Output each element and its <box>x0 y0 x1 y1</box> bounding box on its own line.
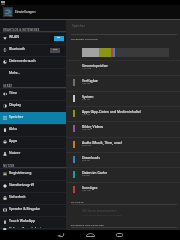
staticText: Display <box>9 102 66 107</box>
button[interactable]: Home <box>82 230 98 240</box>
staticText: Sonstiges <box>82 185 98 190</box>
staticText: 6,89 GB <box>82 82 90 85</box>
staticText: AN <box>57 36 61 39</box>
staticText: Sicherheit <box>9 194 66 199</box>
button[interactable]: Audio (Musik, Töne, usw.) <box>66 137 180 152</box>
button[interactable]: AN <box>50 36 64 41</box>
staticText: Speicher <box>9 114 66 119</box>
button[interactable]: Downloads <box>66 152 180 167</box>
button[interactable]: Recent apps <box>111 230 127 240</box>
staticText: Nutzer <box>9 150 66 155</box>
staticText: Gesamtspeicher <box>82 63 108 68</box>
button[interactable]: Gesamtspeicher <box>66 60 180 75</box>
button[interactable]: Apps <box>0 136 66 148</box>
staticText: Apps <box>9 138 66 143</box>
button[interactable]: Display <box>0 100 66 112</box>
staticText: 8,96 MB <box>82 128 91 131</box>
button[interactable]: Standortzugriff <box>0 180 66 192</box>
button[interactable]: Touch WakeApp <box>0 216 66 228</box>
staticText: 8,00 KB <box>82 159 90 162</box>
staticText: Speicher <box>72 24 85 28</box>
button[interactable]: Sichern & zurücksetzen <box>0 228 66 230</box>
staticText: Töne <box>9 90 66 95</box>
button[interactable]: Speicher <box>0 112 66 124</box>
staticText: System <box>82 94 94 99</box>
staticText: 14,00 GB <box>82 67 92 70</box>
staticText: NUTZER <box>3 164 15 168</box>
button[interactable]: Sonstiges <box>66 182 180 197</box>
staticText: SD-Karte bereitstellen <box>82 208 117 213</box>
button[interactable]: Verfügbar <box>66 75 180 90</box>
staticText: Bluetooth <box>9 46 50 51</box>
button[interactable]: Bilder, Videos <box>66 121 180 136</box>
staticText: Datenverbrauch <box>9 58 66 63</box>
staticText: Daten im Cache <box>82 170 108 175</box>
button[interactable]: Mehr... <box>0 68 66 80</box>
staticText: Bilder, Videos <box>82 124 104 129</box>
staticText: GERÄT <box>3 84 13 88</box>
staticText: 3,38 GB <box>82 98 90 101</box>
button[interactable]: Bluetooth <box>0 44 66 56</box>
button[interactable]: Nutzer <box>0 148 66 160</box>
staticText: EXTERNER USB-SPEICHER <box>71 223 104 226</box>
staticText: Apps (App-Daten und Medieninhalte) <box>82 109 141 114</box>
staticText: Akku <box>9 126 66 131</box>
staticText: Downloads <box>82 155 100 160</box>
staticText: Mehr... <box>9 70 66 75</box>
staticText: Verfügbar <box>82 78 99 83</box>
staticText: Sichern & zurücksetzen <box>9 226 66 228</box>
staticText: Sprache & Eingabe <box>9 206 66 211</box>
staticText: WLAN <box>9 34 50 39</box>
staticText: 248 MB <box>82 174 90 177</box>
staticText: 0,89 MB <box>82 189 91 192</box>
button[interactable]: Datenverbrauch <box>0 56 66 68</box>
button[interactable]: Apps (App-Daten und Medieninhalte) <box>66 106 180 121</box>
button[interactable]: Töne <box>0 88 66 100</box>
staticText: Touch WakeApp <box>9 218 66 223</box>
button[interactable]: Daten im Cache <box>66 167 180 182</box>
button[interactable]: SD-Karte bereitstellen <box>82 208 123 216</box>
staticText: Einstellungen <box>15 10 36 14</box>
button[interactable]: Sicherheit <box>0 192 66 204</box>
button[interactable]: Sprache & Eingabe <box>0 204 66 216</box>
staticText: 2,19 GB <box>82 113 90 116</box>
staticText: SD-Karte zur Bereitstellung anlegen <box>82 213 123 216</box>
button[interactable]: System <box>66 91 180 106</box>
staticText: INTERNER SPEICHER <box>71 37 98 40</box>
button[interactable]: Akku <box>0 124 66 136</box>
staticText: Audio (Musik, Töne, usw.) <box>82 140 123 145</box>
button[interactable]: WLAN <box>0 32 66 44</box>
staticText: Standortzugriff <box>9 182 66 187</box>
button[interactable]: Registrierung <box>0 168 66 180</box>
button[interactable]: AUS <box>50 48 64 53</box>
staticText: Registrierung <box>9 170 66 175</box>
staticText: 60,00 KB <box>82 144 91 147</box>
staticText: SD-KARTE <box>71 200 84 203</box>
staticText: DRAHTLOS & NETZWERKE <box>3 28 40 32</box>
staticText: AUS <box>53 48 57 51</box>
button[interactable]: Back <box>52 230 68 240</box>
